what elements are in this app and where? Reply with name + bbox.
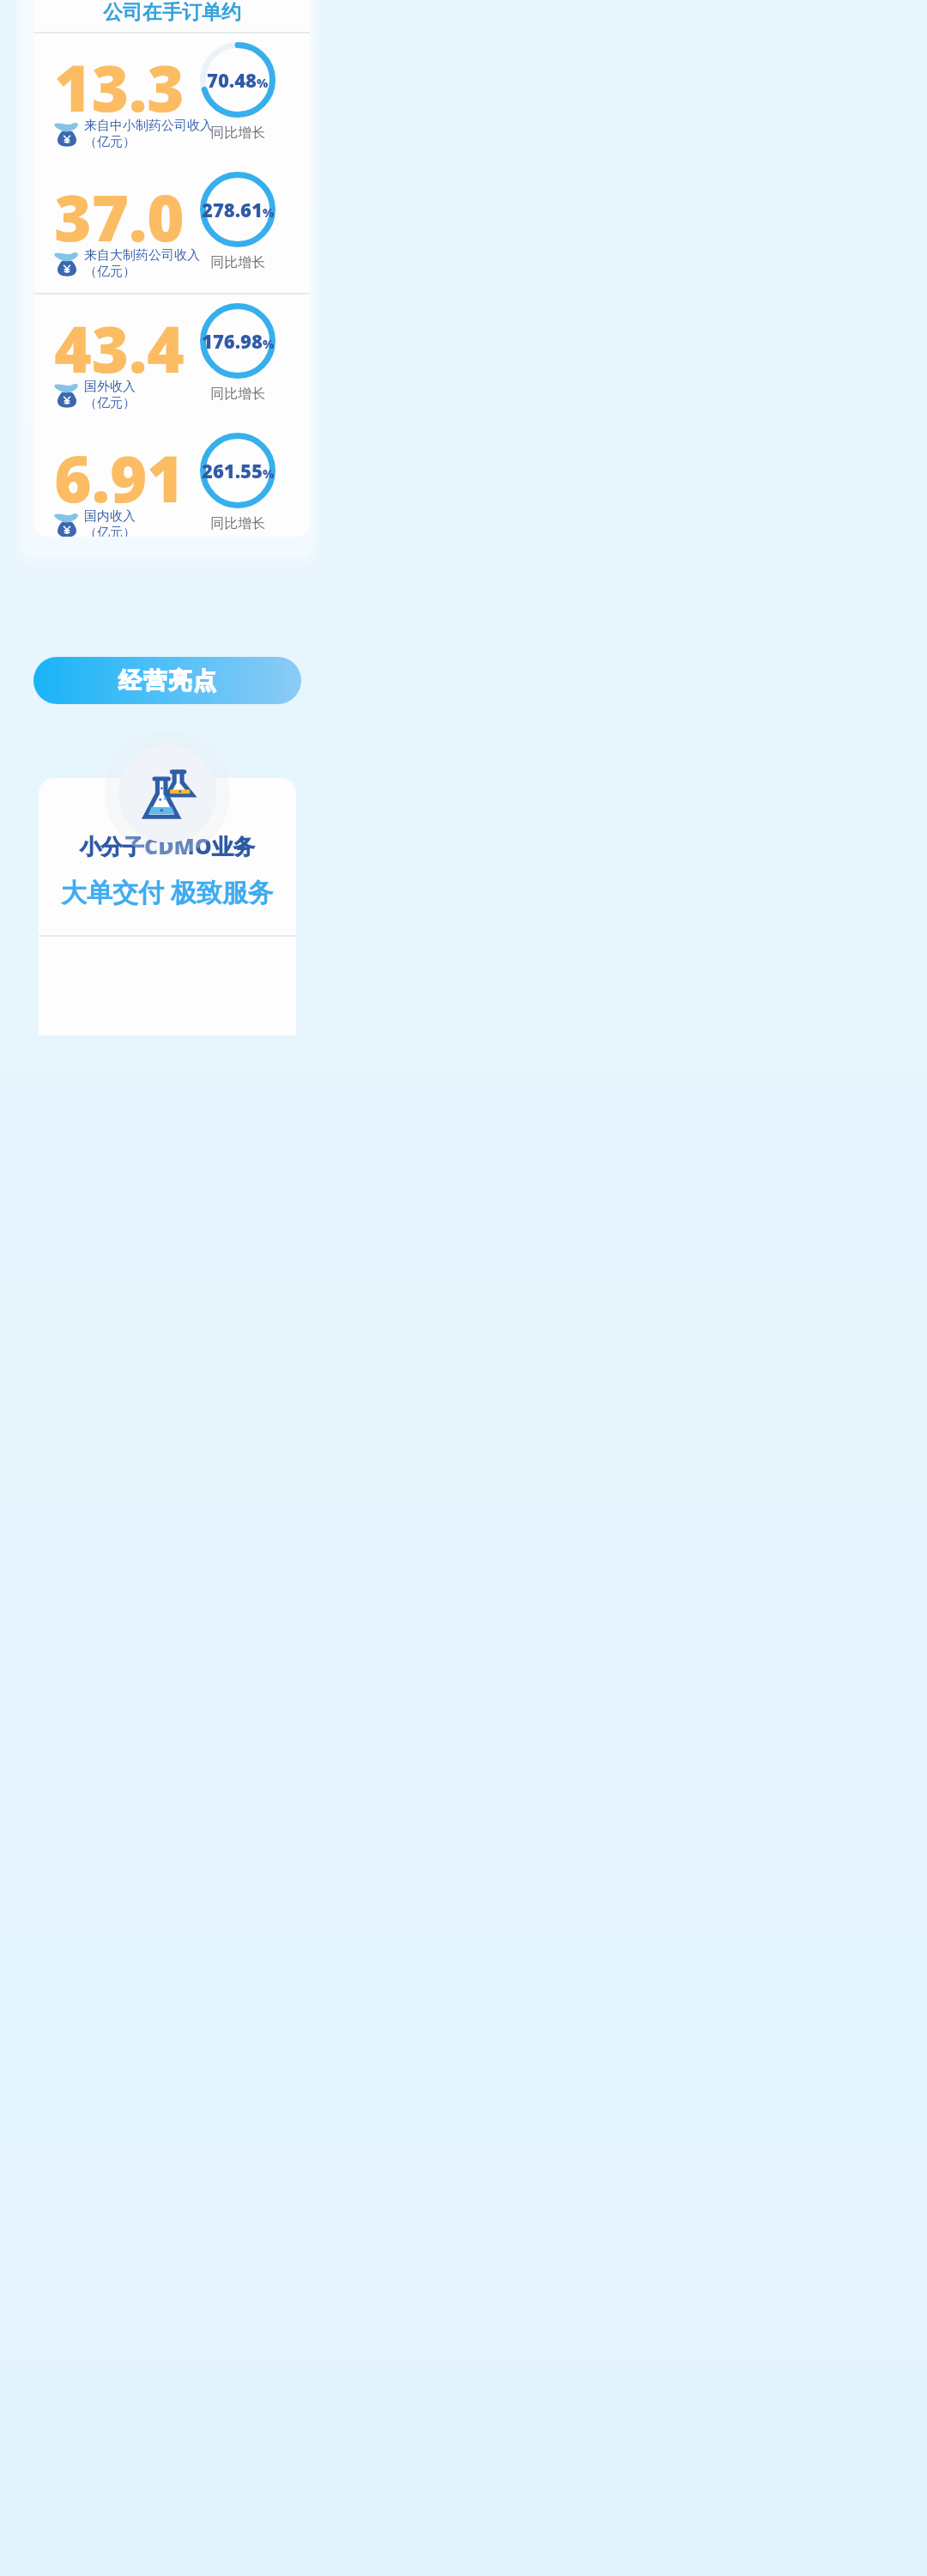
other: Revenue bbox=[54, 251, 80, 276]
button[interactable]: 经营亮点 bbox=[33, 657, 301, 704]
staticText: 同比增长 bbox=[210, 254, 265, 271]
staticText: 经营亮点 bbox=[118, 666, 217, 696]
staticText: 13.33 bbox=[42, 44, 197, 116]
staticText: 来自中小制药公司收入 bbox=[84, 118, 213, 134]
staticText: （亿元） bbox=[84, 395, 136, 411]
other: CDMO business bbox=[138, 764, 197, 823]
staticText: 同比增长 bbox=[210, 515, 265, 532]
staticText: （亿元） bbox=[84, 134, 136, 150]
staticText: % bbox=[257, 75, 269, 91]
other: Revenue bbox=[54, 512, 80, 537]
staticText: 同比增长 bbox=[210, 125, 265, 142]
staticText: 261.55 bbox=[202, 458, 263, 483]
staticText: 来自大制药公司收入 bbox=[84, 247, 200, 264]
staticText: % bbox=[263, 204, 275, 221]
staticText: 43.46 bbox=[42, 305, 197, 377]
staticText: 公司在手订单约 bbox=[103, 0, 241, 24]
other: Revenue bbox=[54, 382, 80, 408]
staticText: 国内收入 bbox=[84, 508, 136, 525]
staticText: % bbox=[263, 336, 275, 352]
staticText: 大单交付 极致服务 bbox=[61, 874, 274, 909]
staticText: （亿元） bbox=[84, 264, 136, 280]
staticText: 6.91 bbox=[54, 434, 185, 507]
staticText: 176.98 bbox=[202, 328, 263, 354]
staticText: 国外收入 bbox=[84, 379, 136, 395]
staticText: （亿元） bbox=[84, 525, 136, 537]
staticText: % bbox=[263, 465, 275, 482]
staticText: 37.04 bbox=[42, 173, 197, 246]
staticText: 同比增长 bbox=[210, 386, 265, 403]
staticText: 278.61 bbox=[202, 197, 263, 222]
staticText: 70.48 bbox=[207, 67, 257, 93]
staticText: 小分子CDMO业务 bbox=[80, 831, 255, 860]
other: Revenue bbox=[54, 121, 80, 147]
